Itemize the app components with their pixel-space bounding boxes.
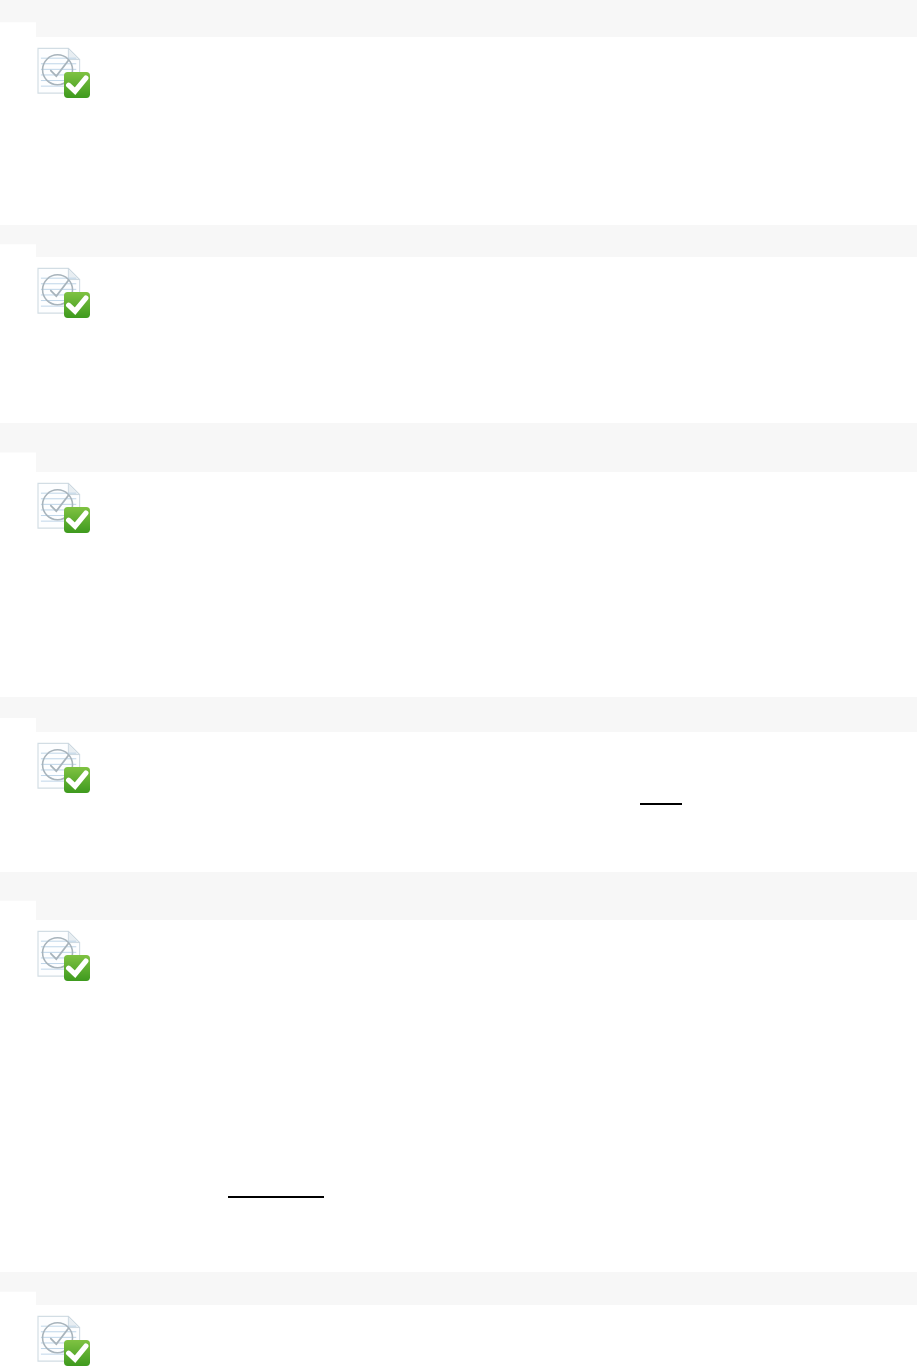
button[interactable]: Verified document xyxy=(38,266,90,318)
button[interactable]: Verified document xyxy=(38,929,90,981)
button[interactable]: Verified document xyxy=(38,46,90,98)
button[interactable]: Verified document xyxy=(38,1314,90,1366)
button[interactable]: Verified document xyxy=(38,481,90,533)
button[interactable]: Verified document xyxy=(38,741,90,793)
